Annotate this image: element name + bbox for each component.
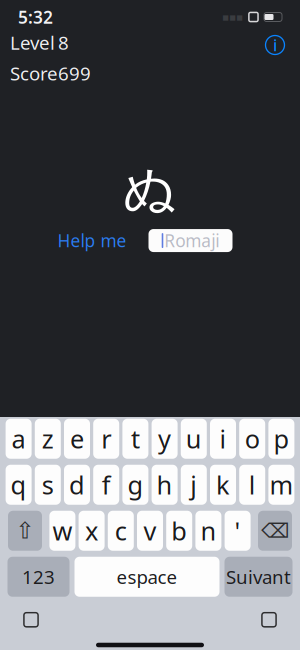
staticText: l	[249, 468, 256, 501]
button[interactable]: e	[64, 419, 90, 459]
staticText: t	[131, 422, 140, 455]
staticText: u	[186, 422, 202, 455]
button[interactable]: Delete	[258, 511, 292, 551]
button[interactable]: n	[195, 511, 221, 551]
staticText: 123	[22, 564, 55, 589]
staticText: ⇧	[15, 518, 34, 544]
staticText: c	[115, 514, 127, 547]
button[interactable]: m	[268, 465, 294, 505]
button[interactable]: o	[239, 419, 265, 459]
button[interactable]: f	[93, 465, 119, 505]
staticText: j	[190, 468, 197, 501]
staticText: a	[12, 422, 26, 455]
staticText: Suivant	[226, 564, 291, 589]
staticText: y	[158, 422, 171, 455]
staticText: Score	[10, 61, 58, 86]
staticText: h	[157, 468, 173, 501]
staticText: Romaji	[164, 229, 219, 252]
staticText: 8	[58, 30, 69, 55]
staticText: m	[269, 468, 293, 501]
staticText: ぬ	[122, 156, 177, 222]
staticText: g	[127, 468, 143, 501]
staticText: i	[219, 422, 226, 455]
button[interactable]: Next keyboard	[14, 605, 48, 635]
button[interactable]: x	[79, 511, 105, 551]
staticText: 5:32	[18, 5, 53, 28]
staticText: '	[235, 514, 241, 547]
staticText: v	[143, 514, 156, 547]
button[interactable]: z	[35, 419, 61, 459]
staticText: i	[273, 34, 277, 56]
button[interactable]: Dictation	[252, 605, 286, 635]
button[interactable]: l	[239, 465, 265, 505]
staticText: ⌫	[261, 519, 289, 542]
button[interactable]: Help me	[51, 225, 132, 256]
button[interactable]: k	[210, 465, 236, 505]
staticText: n	[200, 514, 216, 547]
button[interactable]: s	[35, 465, 61, 505]
button[interactable]: t	[122, 419, 148, 459]
button[interactable]: g	[122, 465, 148, 505]
button[interactable]: p	[268, 419, 294, 459]
button[interactable]: espace	[74, 557, 219, 597]
button[interactable]: q	[6, 465, 32, 505]
staticText: Level	[10, 30, 55, 55]
staticText: q	[11, 468, 27, 501]
staticText: o	[245, 422, 260, 455]
button[interactable]: Information	[260, 30, 290, 60]
staticText: 699	[58, 61, 91, 86]
button[interactable]: a	[6, 419, 32, 459]
staticText: f	[102, 468, 111, 501]
staticText: k	[216, 468, 230, 501]
button[interactable]: c	[108, 511, 134, 551]
button[interactable]: u	[181, 419, 207, 459]
button[interactable]: 123	[7, 557, 69, 597]
staticText: x	[85, 514, 98, 547]
staticText: p	[273, 422, 289, 455]
button[interactable]: j	[181, 465, 207, 505]
staticText: ▪▪▪	[222, 11, 243, 23]
button[interactable]: d	[64, 465, 90, 505]
button[interactable]: r	[93, 419, 119, 459]
staticText: e	[70, 422, 84, 455]
button[interactable]: y	[152, 419, 178, 459]
staticText: s	[42, 468, 54, 501]
staticText: Help me	[57, 229, 126, 252]
button[interactable]: Shift	[8, 511, 42, 551]
button[interactable]: w	[49, 511, 75, 551]
button[interactable]: h	[152, 465, 178, 505]
button[interactable]: '	[225, 511, 251, 551]
staticText: d	[69, 468, 85, 501]
staticText: r	[101, 422, 111, 455]
staticText: z	[42, 422, 54, 455]
staticText: w	[52, 514, 72, 547]
button[interactable]: v	[137, 511, 163, 551]
button[interactable]: i	[210, 419, 236, 459]
button[interactable]: Suivant	[224, 557, 292, 597]
staticText: espace	[116, 564, 177, 589]
staticText: b	[171, 514, 187, 547]
button[interactable]: b	[166, 511, 192, 551]
